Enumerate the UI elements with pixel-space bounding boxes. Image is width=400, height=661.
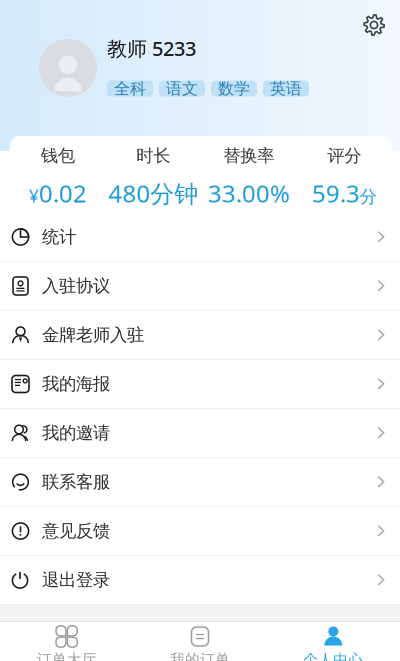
button[interactable]: 入驻协议	[0, 262, 400, 311]
staticText: 33.00%	[208, 177, 290, 209]
staticText: 我的订单	[170, 650, 230, 661]
button[interactable]: Settings	[359, 10, 389, 40]
staticText: 意见反馈	[42, 520, 110, 542]
staticText: 59.3	[312, 177, 360, 209]
staticText: 联系客服	[42, 471, 110, 493]
button[interactable]: 退出登录	[0, 556, 400, 605]
staticText: 退出登录	[42, 569, 110, 591]
button[interactable]: 我的订单	[133, 621, 267, 661]
staticText: 数学	[218, 79, 250, 98]
staticText: 金牌老师入驻	[42, 324, 144, 346]
staticText: 评分	[327, 145, 361, 166]
button[interactable]: 个人中心	[267, 621, 400, 661]
button[interactable]: 我的邀请	[0, 409, 400, 458]
staticText: 钱包	[41, 145, 75, 166]
button[interactable]: 订单大厅	[0, 621, 133, 661]
staticText: 英语	[270, 79, 302, 98]
staticText: 替换率	[223, 145, 274, 166]
staticText: 统计	[42, 226, 76, 248]
staticText: 教师 5233	[107, 35, 196, 62]
staticText: 我的海报	[42, 373, 110, 395]
staticText: 入驻协议	[42, 275, 110, 297]
button[interactable]: 我的海报	[0, 360, 400, 409]
staticText: 0.02	[39, 177, 87, 209]
button[interactable]: 联系客服	[0, 458, 400, 507]
staticText: 全科	[114, 79, 146, 98]
staticText: 我的邀请	[42, 422, 110, 444]
staticText: 订单大厅	[37, 650, 97, 661]
staticText: 时长	[136, 145, 170, 166]
button[interactable]: 统计	[0, 213, 400, 262]
staticText: ¥	[29, 184, 39, 207]
staticText: 分	[360, 186, 377, 207]
staticText: 语文	[166, 79, 198, 98]
staticText: 个人中心	[303, 650, 363, 661]
button[interactable]: 意见反馈	[0, 507, 400, 556]
button[interactable]: 金牌老师入驻	[0, 311, 400, 360]
staticText: 480分钟	[108, 177, 198, 209]
